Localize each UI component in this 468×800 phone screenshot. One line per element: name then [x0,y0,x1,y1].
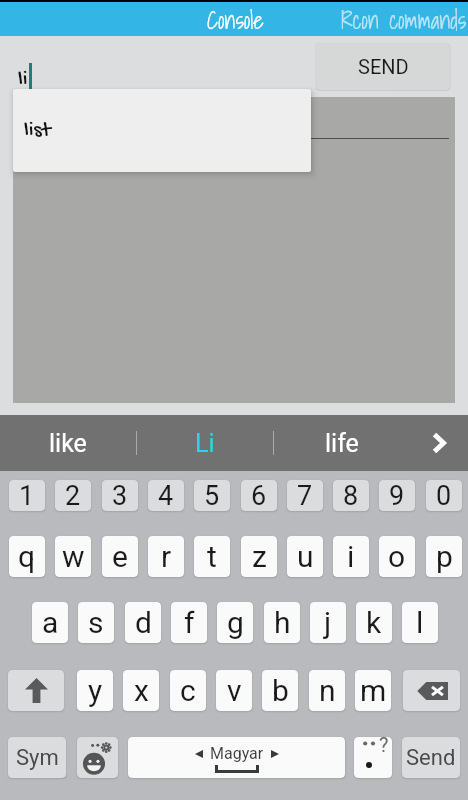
staticText: 5 [204,480,220,511]
button[interactable]: c [170,670,206,711]
button[interactable]: Shift [8,670,64,711]
staticText: j [324,605,332,640]
staticText: n [319,673,336,708]
button[interactable]: q [9,536,45,577]
staticText: 1 [19,480,35,511]
button[interactable]: 3 [102,480,138,511]
staticText: 0 [436,480,452,511]
staticText: Magyar [210,744,264,763]
button[interactable]: Emoji [77,737,118,778]
staticText: i [347,539,355,574]
button[interactable]: 8 [333,480,369,511]
button[interactable]: 0 [426,480,462,511]
button[interactable]: Rcon commands [341,2,468,36]
button[interactable]: Period [354,737,392,778]
staticText: s [88,605,104,640]
staticText: SEND [358,55,409,78]
button[interactable]: Send [402,737,460,778]
staticText: y [88,673,103,708]
staticText: 7 [297,480,313,511]
button[interactable]: More suggestions [410,415,468,471]
staticText: q [18,539,36,574]
button[interactable]: Sym [8,737,66,778]
button[interactable]: l [402,602,438,643]
staticText: 9 [389,480,405,511]
button[interactable]: x [123,670,159,711]
button[interactable]: w [55,536,91,577]
button[interactable]: like [0,415,136,471]
staticText: g [227,605,244,640]
button[interactable]: 4 [148,480,184,511]
button[interactable]: d [125,602,161,643]
button[interactable]: h [264,602,300,643]
button[interactable]: j [310,602,346,643]
button[interactable]: Console [170,2,300,36]
staticText: b [272,673,289,708]
staticText: Li [195,429,215,458]
button[interactable]: Backspace [403,670,460,711]
staticText: h [274,605,291,640]
staticText: o [388,539,406,574]
button[interactable]: p [426,536,462,577]
button[interactable]: t [194,536,230,577]
button[interactable]: 5 [194,480,230,511]
staticText: Sym [16,745,59,771]
button[interactable]: Li [137,415,273,471]
staticText: x [134,673,149,708]
button[interactable]: v [216,670,252,711]
button[interactable]: 2 [55,480,91,511]
staticText: d [135,605,152,640]
staticText: c [180,673,196,708]
button[interactable]: m [355,670,391,711]
button[interactable]: li [0,36,316,97]
staticText: z [252,539,267,574]
button[interactable]: SEND [316,43,450,90]
button[interactable]: i [333,536,369,577]
button[interactable]: list [13,89,311,172]
button[interactable]: b [262,670,298,711]
button[interactable]: life [274,415,410,471]
button[interactable]: z [241,536,277,577]
staticText: 4 [158,480,174,511]
staticText: like [49,429,87,458]
button[interactable]: u [287,536,323,577]
button[interactable]: o [379,536,415,577]
staticText: list [24,118,51,144]
button[interactable]: g [217,602,253,643]
button[interactable]: k [356,602,392,643]
button[interactable]: a [32,602,68,643]
staticText: u [297,539,314,574]
staticText: Console [207,2,264,36]
button[interactable]: Space [128,737,345,778]
staticText: 3 [112,480,128,511]
button[interactable]: r [148,536,184,577]
button[interactable]: s [78,602,114,643]
staticText: ? [379,737,389,756]
staticText: e [112,539,128,574]
staticText: m [360,673,387,708]
button[interactable]: 7 [287,480,323,511]
staticText: f [184,605,195,640]
button[interactable]: n [309,670,345,711]
staticText: t [207,539,217,574]
staticText: w [62,539,85,574]
staticText: l [416,605,424,640]
button[interactable]: 6 [241,480,277,511]
button[interactable]: y [77,670,113,711]
staticText: 6 [251,480,267,511]
staticText: 2 [65,480,81,511]
staticText: r [161,539,172,574]
staticText: 8 [343,480,359,511]
staticText: Rcon commands [341,2,467,36]
button[interactable]: 9 [379,480,415,511]
staticText: p [436,539,453,574]
staticText: k [366,605,382,640]
staticText: Send [406,745,456,771]
button[interactable]: 1 [9,480,45,511]
button[interactable]: f [171,602,207,643]
staticText: v [227,673,242,708]
staticText: li [18,67,28,93]
staticText: life [325,429,359,458]
button[interactable]: e [102,536,138,577]
staticText: a [42,605,59,640]
